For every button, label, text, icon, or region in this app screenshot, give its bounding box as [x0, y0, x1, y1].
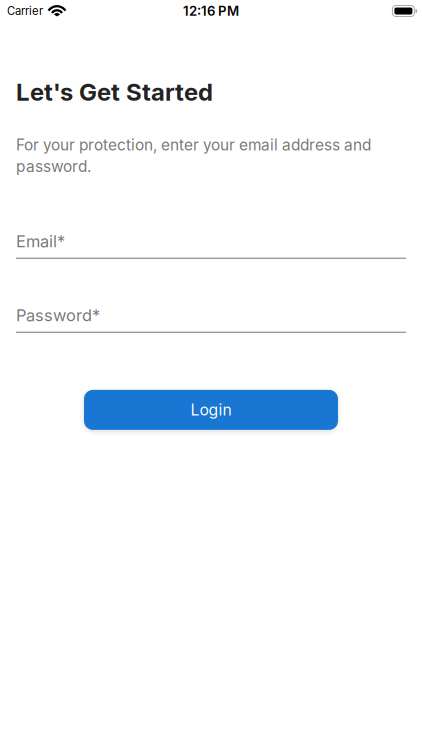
- button[interactable]: Login: [84, 390, 338, 430]
- staticText: Email*: [16, 231, 65, 251]
- button[interactable]: Password*: [0, 305, 406, 333]
- staticText: Login: [190, 400, 231, 419]
- staticText: Let's Get Started: [16, 77, 213, 106]
- button[interactable]: Email*: [0, 231, 406, 259]
- staticText: Password*: [16, 305, 100, 325]
- staticText: Carrier: [7, 4, 43, 18]
- staticText: 12:16 PM: [183, 3, 239, 19]
- staticText: password.: [16, 157, 91, 176]
- staticText: For your protection, enter your email ad…: [16, 135, 371, 154]
